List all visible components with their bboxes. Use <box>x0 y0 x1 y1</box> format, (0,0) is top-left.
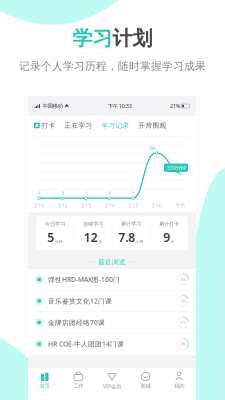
staticText: 25% <box>179 277 186 282</box>
staticText: 下午 10:33 <box>108 102 132 110</box>
staticText: 9 <box>163 229 170 245</box>
staticText: 38% <box>179 341 186 347</box>
staticText: 0 <box>61 190 63 196</box>
staticText: HR COE-牛人团团14门课 <box>48 340 124 348</box>
staticText: 0 <box>108 190 110 196</box>
button[interactable]: HR COE-牛人团团14门课 <box>28 333 196 354</box>
staticText: 最近浏览 <box>98 258 126 266</box>
button[interactable]: 我的 <box>162 372 196 400</box>
staticText: 累计打卡 <box>159 221 179 227</box>
staticText: 1 <box>132 190 134 196</box>
staticText: 首页 <box>40 383 50 389</box>
staticText: 5 <box>47 229 54 245</box>
staticText: 339分钟 <box>166 164 185 171</box>
staticText: 566 <box>149 145 155 151</box>
staticText: 3.16 <box>151 202 161 209</box>
staticText: 今天 <box>175 202 185 209</box>
button[interactable]: 打卡 <box>34 121 55 130</box>
staticText: 中国移动 <box>42 103 62 109</box>
staticText: 7.8 <box>118 229 135 245</box>
staticText: 学习 <box>72 26 112 51</box>
staticText: 分钟 <box>55 239 63 244</box>
staticText: 3.13 <box>81 202 91 209</box>
staticText: 小时 <box>136 239 144 244</box>
button[interactable]: 商城 <box>129 372 162 400</box>
staticText: 天 <box>171 239 175 244</box>
button[interactable]: 开营围观 <box>138 121 166 130</box>
staticText: 3.15 <box>128 202 138 209</box>
staticText: 计划 <box>112 26 152 51</box>
staticText: 打卡 <box>41 121 55 130</box>
staticText: 工作 <box>73 383 83 389</box>
staticText: 3.12 <box>57 202 67 209</box>
button[interactable]: 首页 <box>28 372 62 400</box>
staticText: 累计学习 <box>121 221 141 227</box>
staticText: 我的 <box>174 383 184 389</box>
staticText: 弹性HRD-MAX图-160门 <box>48 275 120 284</box>
staticText: 记录个人学习历程，随时掌握学习成果 <box>19 60 206 73</box>
staticText: 音乐鉴赏文化12门课 <box>48 297 112 305</box>
staticText: 金牌店团经络70课 <box>48 318 105 327</box>
staticText: 12 <box>84 229 98 245</box>
button[interactable]: 工作 <box>62 372 95 400</box>
staticText: 连续学习 <box>83 221 103 227</box>
button[interactable]: 学习记录 <box>101 121 129 130</box>
staticText: 0 <box>38 190 40 196</box>
staticText: 18% <box>179 298 186 304</box>
button[interactable]: 音乐鉴赏文化12门课 <box>28 290 196 311</box>
button[interactable]: 弹性HRD-MAX图-160门 <box>28 269 196 290</box>
staticText: 21% <box>179 320 186 325</box>
button[interactable]: 正在学习 <box>64 121 92 130</box>
staticText: 3.14 <box>104 202 114 209</box>
staticText: VIP会员 <box>103 383 121 390</box>
staticText: 3.11 <box>34 202 44 209</box>
staticText: 学习记录 <box>101 121 129 130</box>
staticText: 商城 <box>141 383 151 389</box>
staticText: 今日学习 <box>45 221 65 227</box>
staticText: 21% <box>170 102 180 110</box>
staticText: 天 <box>98 239 102 244</box>
staticText: 开营围观 <box>138 121 166 130</box>
button[interactable]: VIP会员 <box>95 372 129 400</box>
button[interactable]: 金牌店团经络70课 <box>28 312 196 333</box>
staticText: 1 <box>85 190 87 196</box>
staticText: 正在学习 <box>64 121 92 130</box>
